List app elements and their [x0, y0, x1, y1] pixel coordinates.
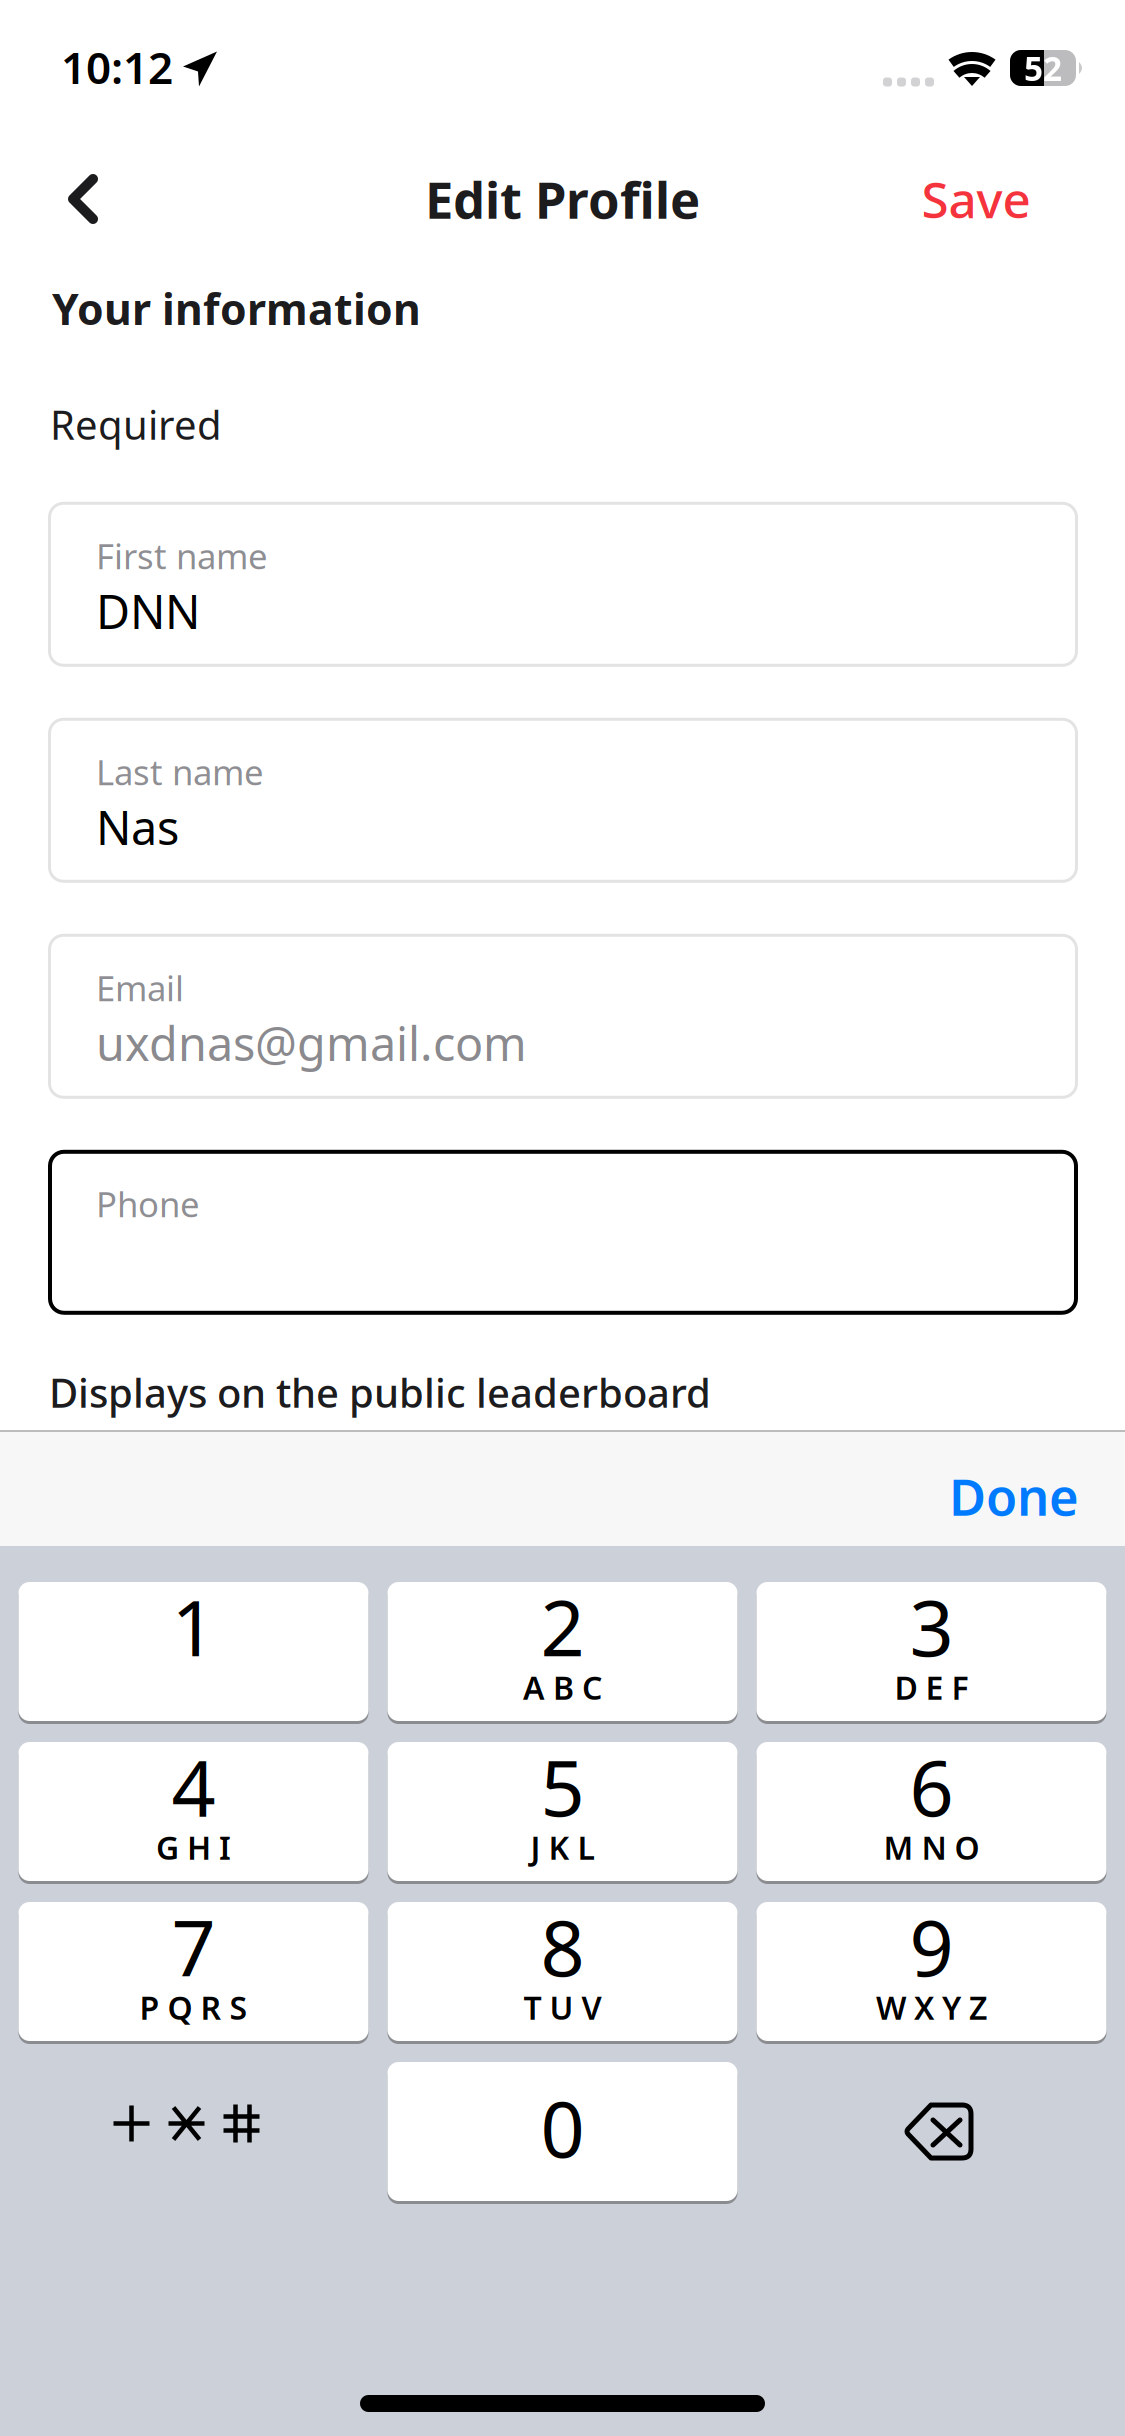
- button[interactable]: 1: [18, 1582, 368, 1721]
- button[interactable]: 3: [756, 1582, 1106, 1721]
- staticText: 5: [540, 1735, 584, 1838]
- button[interactable]: Last name: [48, 718, 1078, 883]
- button[interactable]: Delete: [756, 2062, 1106, 2201]
- button[interactable]: Save: [901, 152, 1051, 246]
- button[interactable]: 7: [18, 1902, 368, 2041]
- button[interactable]: Email: [48, 934, 1078, 1099]
- staticText: Done: [949, 1462, 1079, 1530]
- staticText: 52: [1024, 46, 1062, 90]
- staticText: 0: [540, 2076, 584, 2179]
- staticText: 4: [171, 1735, 215, 1838]
- staticText: 8: [540, 1895, 584, 1998]
- staticText: Required: [50, 398, 222, 451]
- staticText: M N O: [883, 1826, 979, 1868]
- staticText: 3: [909, 1575, 953, 1678]
- staticText: Last name: [96, 749, 264, 795]
- button[interactable]: 5: [387, 1742, 737, 1881]
- staticText: W X Y Z: [876, 1986, 987, 2028]
- button[interactable]: 2: [387, 1582, 737, 1721]
- button[interactable]: 4: [18, 1742, 368, 1881]
- button[interactable]: Done: [949, 1430, 1079, 1546]
- button[interactable]: Back: [36, 152, 130, 246]
- staticText: First name: [96, 533, 268, 579]
- staticText: Your information: [52, 280, 421, 337]
- staticText: Edit Profile: [425, 165, 700, 233]
- staticText: P Q R S: [139, 1986, 247, 2028]
- staticText: 7: [171, 1895, 215, 1998]
- button[interactable]: 8: [387, 1902, 737, 2041]
- button[interactable]: Plus asterisk pound: [18, 2062, 368, 2201]
- staticText: 10:12: [61, 38, 173, 96]
- staticText: 1: [171, 1575, 215, 1678]
- staticText: Save: [921, 166, 1030, 232]
- staticText: A B C: [523, 1666, 602, 1708]
- staticText: G H I: [156, 1826, 231, 1868]
- staticText: Email: [96, 965, 184, 1011]
- staticText: Phone: [96, 1181, 200, 1227]
- button[interactable]: 9: [756, 1902, 1106, 2041]
- button[interactable]: 0: [387, 2062, 737, 2201]
- staticText: 9: [909, 1895, 953, 1998]
- staticText: DNN: [96, 580, 200, 642]
- staticText: uxdnas@gmail.com: [96, 1012, 527, 1074]
- staticText: T U V: [523, 1986, 601, 2028]
- staticText: D E F: [894, 1666, 968, 1708]
- button[interactable]: First name: [48, 502, 1078, 667]
- button[interactable]: 6: [756, 1742, 1106, 1881]
- staticText: 6: [909, 1735, 953, 1838]
- button[interactable]: Phone: [48, 1150, 1078, 1315]
- staticText: Displays on the public leaderboard: [49, 1366, 711, 1419]
- staticText: Nas: [96, 796, 179, 858]
- staticText: 2: [540, 1575, 584, 1678]
- staticText: J K L: [530, 1826, 594, 1868]
